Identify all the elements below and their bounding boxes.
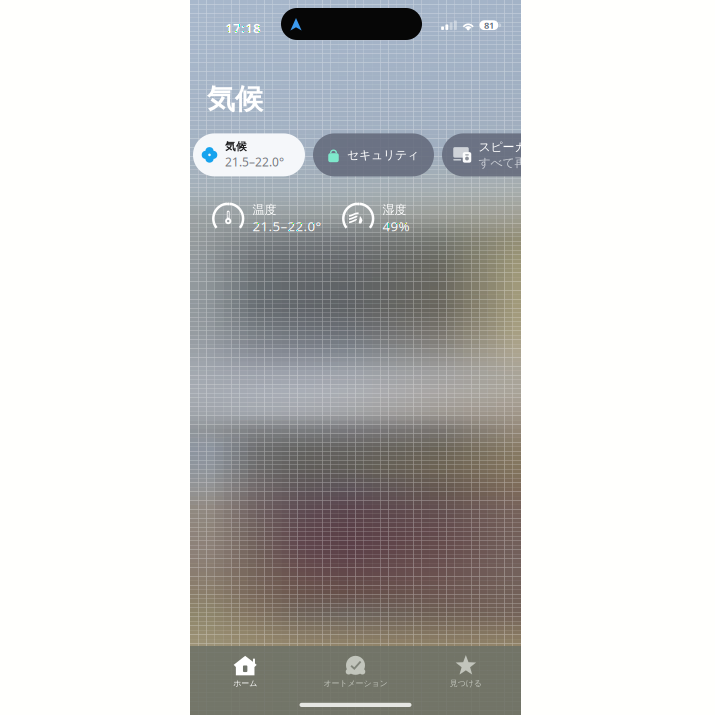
staticText: 気候	[207, 82, 263, 116]
staticText: ホーム	[233, 678, 257, 688]
button[interactable]: オートメーション	[300, 649, 411, 694]
staticText: 17:18	[225, 19, 261, 37]
button[interactable]: セキュリティ	[313, 133, 434, 176]
staticText: 湿度	[382, 202, 406, 217]
staticText: 気候	[225, 140, 247, 153]
button[interactable]: ホーム	[190, 649, 300, 694]
staticText: セキュリティ	[347, 147, 419, 162]
button[interactable]: 気候	[193, 133, 305, 176]
staticText: 見つける	[450, 678, 482, 688]
staticText: 49%	[382, 217, 409, 235]
button[interactable]: 見つける	[411, 649, 521, 694]
staticText: 温度	[252, 202, 276, 217]
staticText: 21.5–22.0°	[225, 154, 284, 170]
staticText: オートメーション	[323, 678, 387, 688]
staticText: スピーカ	[478, 140, 526, 154]
staticText: すべて再	[478, 155, 526, 170]
staticText: 21.5–22.0°	[252, 217, 321, 235]
button[interactable]: スピーカ	[442, 133, 560, 176]
staticText: 81	[484, 19, 494, 31]
